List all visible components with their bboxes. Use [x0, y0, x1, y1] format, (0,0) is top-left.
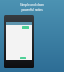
staticText: powerful notes	[21, 8, 43, 12]
button[interactable]: Add	[20, 57, 26, 59]
button[interactable]: New note	[22, 26, 29, 29]
staticText: Simple and clean	[20, 3, 44, 7]
